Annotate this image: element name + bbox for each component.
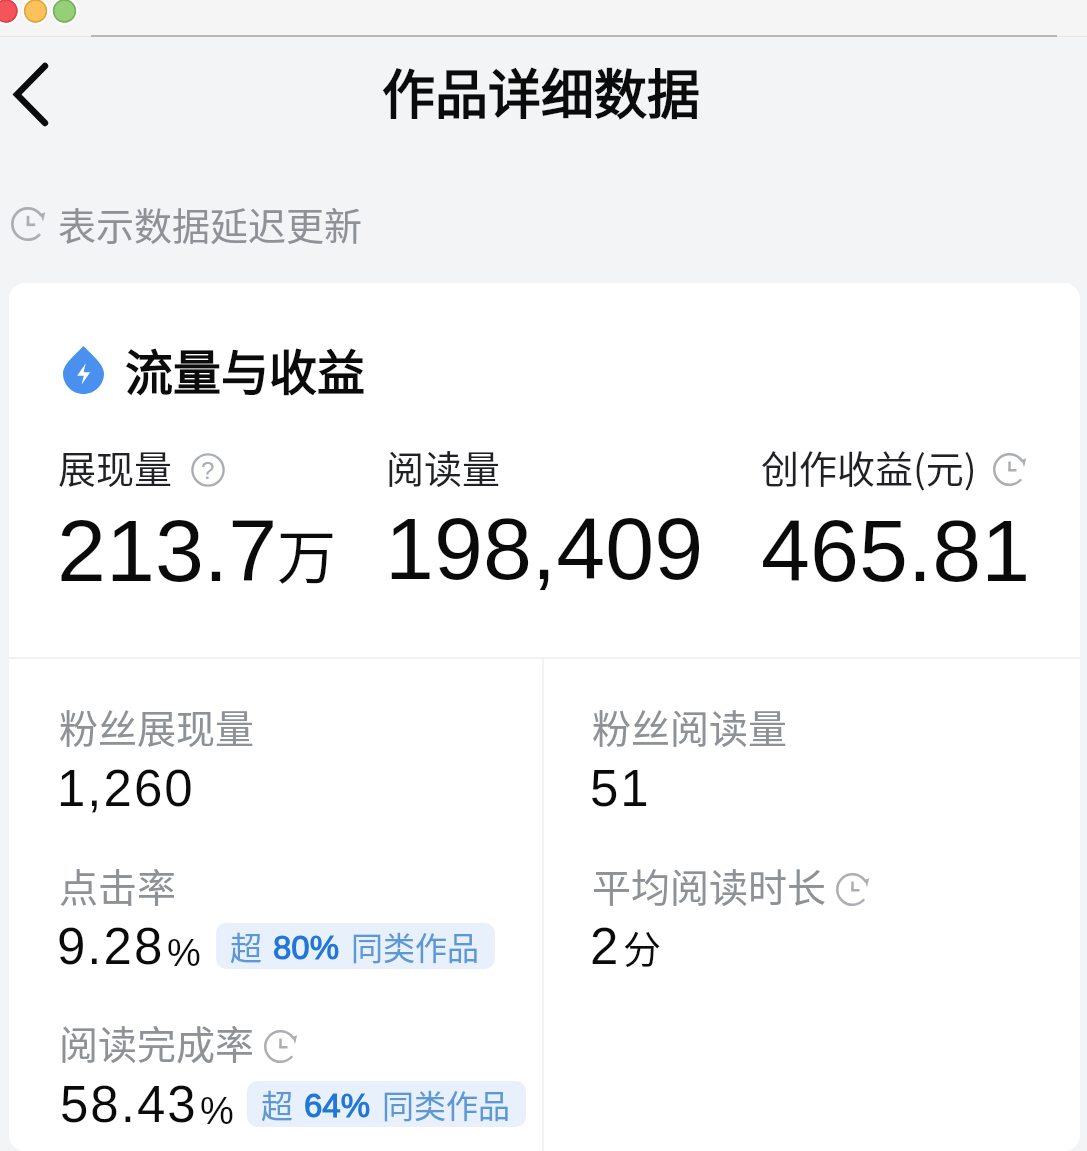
- button[interactable]: [39, 1004, 539, 1144]
- staticText: 465.81: [761, 501, 1031, 599]
- button[interactable]: [39, 430, 369, 600]
- staticText: 表示数据延迟更新: [58, 196, 363, 251]
- staticText: 同类作品: [382, 1081, 511, 1127]
- staticText: 万: [277, 511, 337, 596]
- staticText: 80%: [273, 929, 340, 966]
- staticText: 展现量: [58, 439, 173, 494]
- staticText: 1,260: [57, 760, 195, 817]
- button[interactable]: Back: [0, 3, 92, 95]
- button[interactable]: What is 展现量?: [191, 453, 225, 487]
- staticText: 58.43: [60, 1076, 198, 1133]
- button[interactable]: [744, 430, 1064, 600]
- button[interactable]: [369, 430, 739, 600]
- staticText: 198,409: [385, 499, 704, 597]
- staticText: %: [167, 932, 201, 974]
- staticText: 粉丝阅读量: [592, 698, 788, 754]
- staticText: 阅读完成率: [59, 1014, 255, 1070]
- staticText: 51: [590, 760, 651, 817]
- staticText: 9.28: [57, 918, 165, 975]
- staticText: 粉丝展现量: [59, 698, 255, 754]
- staticText: 213.7: [57, 501, 278, 599]
- button[interactable]: [569, 688, 1069, 828]
- staticText: 2: [590, 918, 621, 975]
- staticText: 同类作品: [351, 923, 480, 969]
- staticText: 超: [230, 923, 263, 969]
- button[interactable]: [569, 847, 1069, 987]
- staticText: 64%: [304, 1087, 371, 1124]
- staticText: 阅读量: [386, 439, 501, 494]
- staticText: 超: [261, 1081, 294, 1127]
- staticText: ?: [201, 457, 215, 484]
- staticText: 创作收益(元): [761, 439, 977, 494]
- staticText: 流量与收益: [125, 334, 366, 404]
- button[interactable]: [39, 688, 539, 828]
- staticText: %: [200, 1090, 234, 1132]
- staticText: 点击率: [59, 857, 177, 913]
- staticText: 分: [623, 919, 662, 974]
- staticText: 作品详细数据: [382, 53, 700, 130]
- staticText: 平均阅读时长: [592, 857, 827, 913]
- button[interactable]: [39, 847, 539, 987]
